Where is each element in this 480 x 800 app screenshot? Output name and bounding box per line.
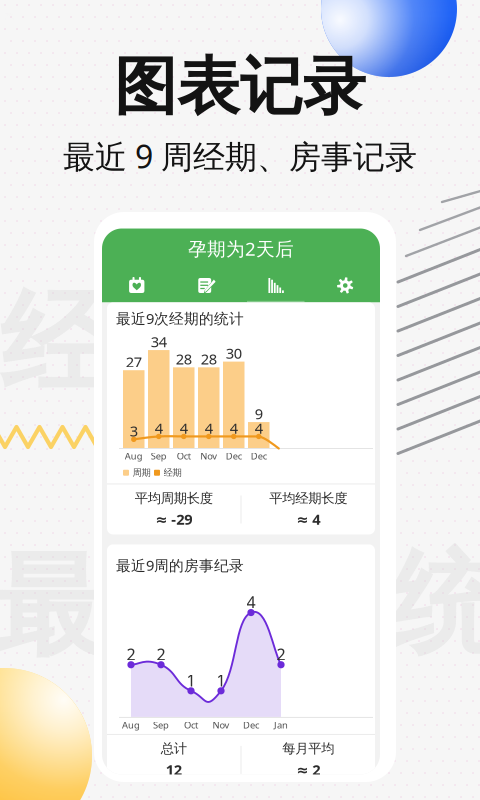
staticText: 每月平均 [282, 740, 334, 757]
staticText: 最近 [0, 538, 216, 676]
staticText: ≈ 2 [296, 760, 320, 779]
staticText: 周期 [132, 467, 150, 478]
staticText: 28 [201, 349, 217, 369]
staticText: 30 [226, 343, 242, 363]
staticText: ≈ -29 [155, 509, 192, 529]
staticText: 经期 [163, 467, 181, 478]
staticText: 记 [216, 246, 328, 384]
button[interactable]: 日历 [102, 277, 171, 294]
staticText: 27 [126, 352, 142, 371]
staticText: 最近 9 周经期、房事记录 [63, 135, 417, 177]
button[interactable]: 设置 [310, 277, 380, 294]
staticText: 平均周期长度 [135, 490, 213, 506]
staticText: 34 [151, 332, 167, 351]
staticText: 最近9次经期的统计 [116, 308, 244, 328]
staticText: Dec [243, 719, 259, 731]
staticText: Dec [251, 450, 267, 462]
staticText: 统计 [390, 536, 480, 674]
staticText: Nov [212, 719, 229, 731]
staticText: Nov [200, 450, 217, 462]
staticText: ≈ 4 [296, 509, 320, 529]
staticText: 平均经期长度 [269, 490, 347, 506]
staticText: 4 [255, 418, 263, 438]
staticText: 4 [180, 418, 188, 438]
staticText: Aug [125, 450, 143, 462]
staticText: 4 [155, 418, 163, 438]
staticText: 1 [186, 670, 195, 691]
staticText: 28 [176, 349, 192, 369]
button[interactable]: 记录 [171, 277, 241, 294]
staticText: Aug [122, 719, 140, 731]
staticText: 经期 [0, 276, 224, 414]
button[interactable]: 图表 [241, 277, 310, 294]
staticText: 3 [130, 421, 138, 441]
staticText: 4 [230, 418, 238, 438]
staticText: 4 [205, 418, 213, 438]
staticText: 2 [156, 644, 165, 665]
staticText: Sep [153, 719, 169, 731]
staticText: 12 [166, 760, 182, 779]
staticText: 图表记录 [114, 48, 366, 125]
staticText: Oct [177, 450, 191, 462]
staticText: 1 [216, 670, 225, 691]
staticText: 4 [246, 591, 255, 613]
staticText: Dec [226, 450, 242, 462]
staticText: 总计 [161, 740, 187, 757]
staticText: Oct [184, 719, 198, 731]
staticText: Jan [274, 719, 288, 731]
staticText: 9 [255, 404, 263, 423]
staticText: 孕期为2天后 [188, 236, 294, 261]
staticText: Sep [151, 450, 167, 462]
staticText: 最近9周的房事纪录 [116, 555, 244, 575]
staticText: 2 [126, 644, 135, 665]
staticText: 2 [276, 644, 285, 665]
